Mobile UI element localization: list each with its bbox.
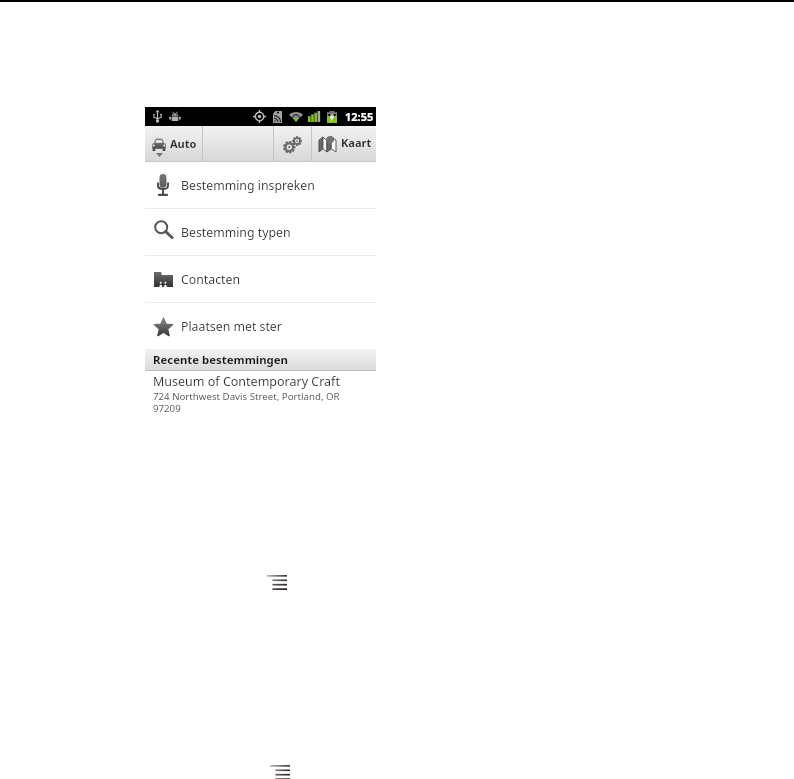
button[interactable]: Auto — [145, 126, 202, 162]
button[interactable]: Bestemming typen — [145, 209, 376, 255]
staticText: Bestemming typen — [181, 224, 291, 241]
staticText: Contacten — [181, 271, 241, 288]
staticText: Bestemming inspreken — [181, 177, 315, 194]
staticText: 724 Northwest Davis Street, Portland, OR… — [153, 390, 349, 414]
button[interactable]: Plaatsen met ster — [145, 303, 376, 349]
staticText: 12:55 — [345, 109, 374, 124]
button[interactable]: Museum of Contemporary Craft — [145, 371, 376, 420]
staticText: Recente bestemmingen — [153, 352, 288, 368]
button[interactable]: Kaart — [312, 126, 376, 162]
staticText: Auto — [170, 136, 197, 151]
staticText: Museum of Contemporary Craft — [153, 373, 340, 390]
button[interactable]: Instellingen — [274, 126, 311, 162]
staticText: Kaart — [341, 135, 372, 150]
button[interactable]: Bestemming inspreken — [145, 162, 376, 208]
button[interactable]: Contacten — [145, 256, 376, 302]
staticText: Plaatsen met ster — [181, 318, 282, 335]
